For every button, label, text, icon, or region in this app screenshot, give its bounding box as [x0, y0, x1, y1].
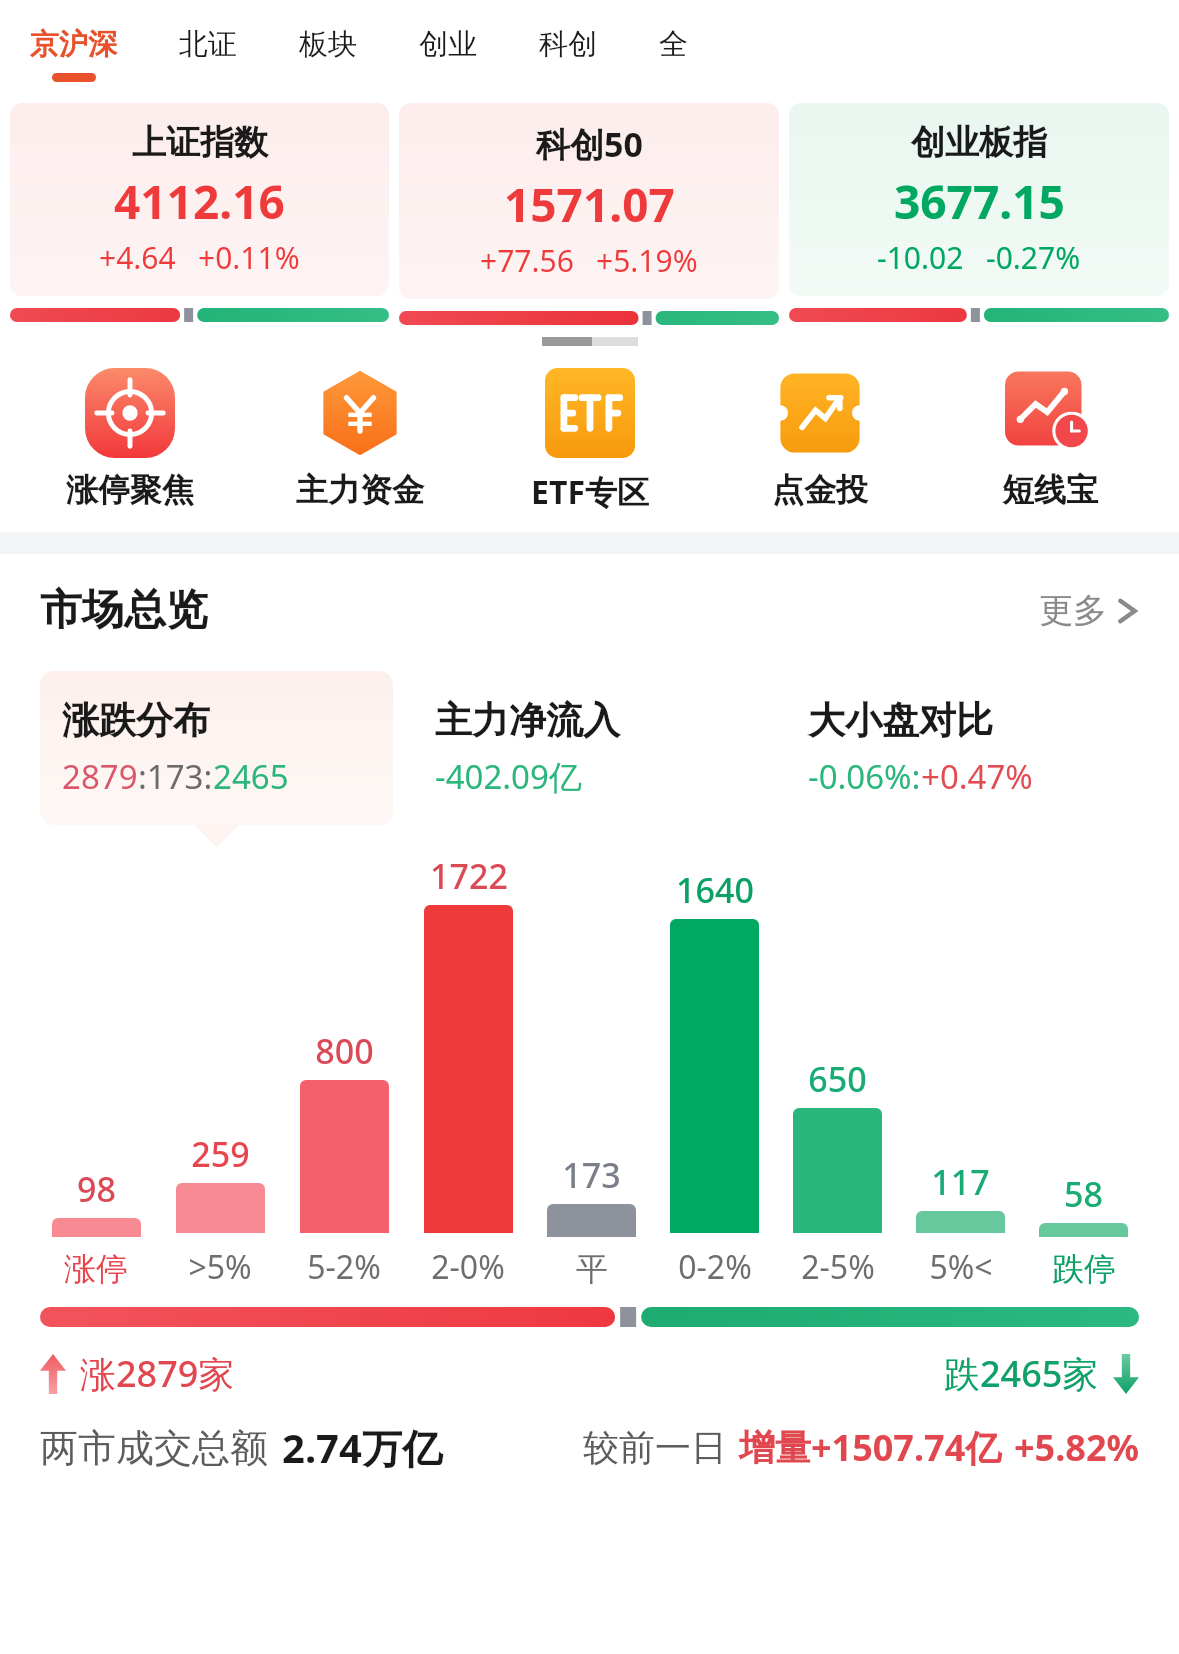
- staticText: 科创: [539, 26, 597, 63]
- button[interactable]: 650: [776, 853, 899, 1289]
- button[interactable]: 更多: [1039, 589, 1139, 632]
- button[interactable]: 创业: [419, 0, 477, 73]
- staticText: +0.47%: [921, 754, 1033, 799]
- button[interactable]: 主力资金: [245, 368, 475, 510]
- staticText: 2879: [62, 754, 138, 799]
- staticText: 点金投: [772, 470, 868, 510]
- button[interactable]: 全: [659, 0, 688, 73]
- button[interactable]: 点金投: [705, 368, 935, 510]
- button[interactable]: 短线宝: [935, 368, 1165, 510]
- staticText: 涨跌分布: [62, 697, 210, 744]
- button[interactable]: 259: [158, 853, 282, 1289]
- staticText: 涨2879家: [80, 1349, 235, 1398]
- staticText: 3677.15: [894, 170, 1065, 233]
- staticText: ETF专区: [531, 470, 649, 514]
- button[interactable]: 创业板指: [789, 103, 1169, 296]
- staticText: +77.56: [480, 240, 574, 281]
- staticText: 创业: [419, 26, 477, 63]
- staticText: 涨停聚焦: [66, 470, 194, 510]
- staticText: 2-5%: [801, 1245, 875, 1289]
- button[interactable]: 主力净流入: [413, 671, 766, 825]
- button[interactable]: 1722: [406, 853, 530, 1289]
- staticText: 4112.16: [114, 170, 285, 233]
- staticText: :173:: [138, 754, 213, 799]
- staticText: 2-0%: [431, 1245, 505, 1289]
- staticText: 两市成交总额: [40, 1424, 268, 1472]
- button[interactable]: 板块: [299, 0, 357, 73]
- staticText: 2.74万亿: [282, 1420, 442, 1475]
- button[interactable]: 涨跌分布: [40, 671, 393, 825]
- button[interactable]: 科创50: [399, 103, 779, 299]
- staticText: >5%: [188, 1245, 252, 1289]
- staticText: 科创50: [536, 121, 643, 167]
- staticText: 98: [77, 1166, 116, 1212]
- staticText: +5.82%: [1014, 1423, 1139, 1472]
- staticText: +0.11%: [198, 237, 300, 278]
- staticText: 主力净流入: [435, 697, 620, 744]
- staticText: 全: [659, 26, 688, 63]
- staticText: -0.06%:: [808, 754, 921, 799]
- staticText: 板块: [299, 26, 357, 63]
- staticText: -0.27%: [986, 237, 1081, 278]
- staticText: 跌2465家: [944, 1349, 1099, 1398]
- staticText: 5-2%: [307, 1245, 381, 1289]
- staticText: 0-2%: [678, 1245, 752, 1289]
- staticText: 上证指数: [132, 121, 268, 164]
- staticText: +5.19%: [596, 240, 698, 281]
- button[interactable]: 大小盘对比: [786, 671, 1139, 825]
- button[interactable]: 涨停聚焦: [14, 368, 245, 510]
- staticText: 创业板指: [911, 121, 1047, 164]
- staticText: +1507.74亿: [811, 1423, 1002, 1472]
- staticText: 北证: [179, 26, 237, 63]
- staticText: 2465: [213, 754, 289, 799]
- staticText: 1722: [430, 853, 508, 899]
- staticText: 市场总览: [40, 584, 208, 637]
- staticText: 650: [808, 1056, 867, 1102]
- staticText: 主力资金: [296, 470, 424, 510]
- staticText: 173: [562, 1152, 621, 1198]
- staticText: 800: [315, 1028, 374, 1074]
- staticText: 涨停: [64, 1249, 128, 1289]
- button[interactable]: 北证: [179, 0, 237, 73]
- staticText: 较前一日: [583, 1425, 727, 1470]
- staticText: -10.02: [877, 237, 964, 278]
- button[interactable]: 上证指数: [10, 103, 389, 296]
- button[interactable]: 800: [282, 853, 406, 1289]
- staticText: 更多: [1039, 589, 1107, 632]
- staticText: 大小盘对比: [808, 697, 993, 744]
- button[interactable]: 58: [1022, 857, 1145, 1289]
- button[interactable]: 173: [530, 857, 653, 1289]
- staticText: 5%<: [929, 1245, 993, 1289]
- staticText: 短线宝: [1002, 470, 1098, 510]
- staticText: 平: [576, 1249, 608, 1289]
- button[interactable]: 98: [34, 857, 158, 1289]
- button[interactable]: 1640: [653, 853, 776, 1289]
- staticText: 跌停: [1052, 1249, 1116, 1289]
- staticText: -402.09亿: [435, 754, 582, 799]
- staticText: 1640: [676, 867, 754, 913]
- button[interactable]: 科创: [539, 0, 597, 73]
- button[interactable]: 京沪深: [30, 0, 117, 82]
- staticText: 259: [191, 1131, 250, 1177]
- staticText: 1571.07: [504, 173, 675, 236]
- staticText: +4.64: [99, 237, 176, 278]
- staticText: 58: [1064, 1171, 1103, 1217]
- staticText: 增量: [739, 1425, 811, 1470]
- button[interactable]: 117: [899, 853, 1022, 1289]
- staticText: 117: [931, 1159, 990, 1205]
- staticText: 京沪深: [30, 26, 117, 63]
- button[interactable]: ETF专区: [475, 368, 705, 514]
